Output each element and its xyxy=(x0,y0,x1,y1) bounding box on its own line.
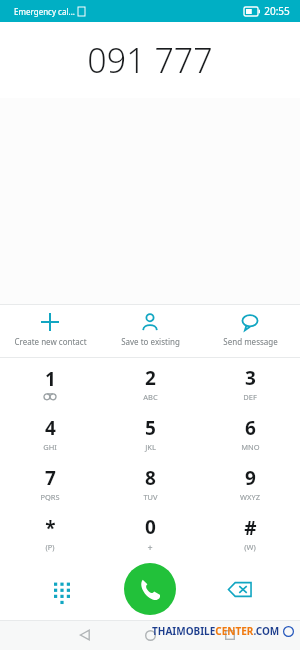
staticText: 1 xyxy=(45,366,56,392)
button[interactable]: 3 xyxy=(200,358,300,408)
staticText: THAIMOBILECENTER.COM xyxy=(152,624,280,638)
button[interactable]: Backspace xyxy=(218,567,262,611)
staticText: (P) xyxy=(45,542,55,552)
staticText: 091 777 xyxy=(87,37,213,83)
button[interactable]: Home xyxy=(135,620,165,650)
button[interactable]: Save to existing xyxy=(100,305,200,357)
staticText: 2 xyxy=(145,365,156,391)
staticText: Save to existing xyxy=(121,336,180,347)
staticText: 6 xyxy=(245,415,256,441)
staticText: * xyxy=(45,515,56,541)
button[interactable]: 5 xyxy=(100,408,200,458)
staticText: WXYZ xyxy=(240,492,260,502)
button[interactable]: Show dialpad xyxy=(40,567,84,611)
button[interactable]: 7 xyxy=(0,458,100,508)
staticText: PQRS xyxy=(40,492,60,502)
staticText: DEF xyxy=(243,392,257,402)
staticText: Create new contact xyxy=(14,336,87,347)
button[interactable]: 6 xyxy=(200,408,300,458)
button[interactable]: Send message xyxy=(200,305,300,357)
button[interactable]: Call xyxy=(124,563,176,615)
staticText: Send message xyxy=(223,336,278,347)
button[interactable]: 2 xyxy=(100,358,200,408)
staticText: 20:55 xyxy=(264,4,290,18)
staticText: 9 xyxy=(245,465,256,491)
button[interactable]: Create new contact xyxy=(0,305,100,357)
button[interactable]: 0 xyxy=(100,508,200,558)
staticText: 7 xyxy=(45,465,56,491)
staticText: Emergency cal... xyxy=(14,6,75,17)
staticText: 8 xyxy=(145,465,156,491)
staticText: GHI xyxy=(43,442,57,452)
staticText: 5 xyxy=(145,415,156,441)
staticText: MNO xyxy=(241,442,260,452)
button[interactable]: * xyxy=(0,508,100,558)
staticText: 0 xyxy=(145,514,156,540)
staticText: JKL xyxy=(145,442,156,452)
staticText: 4 xyxy=(45,415,56,441)
button[interactable]: Back xyxy=(70,620,100,650)
staticText: (W) xyxy=(244,542,256,552)
staticText: TUV xyxy=(143,492,158,502)
staticText: 3 xyxy=(245,365,256,391)
staticText: + xyxy=(147,541,153,553)
staticText: ABC xyxy=(143,392,158,402)
button[interactable]: 1 xyxy=(0,358,100,408)
staticText: # xyxy=(244,515,257,541)
button[interactable]: # xyxy=(200,508,300,558)
button[interactable]: 8 xyxy=(100,458,200,508)
button[interactable]: 4 xyxy=(0,408,100,458)
button[interactable]: 9 xyxy=(200,458,300,508)
button[interactable]: Recents xyxy=(215,620,245,650)
